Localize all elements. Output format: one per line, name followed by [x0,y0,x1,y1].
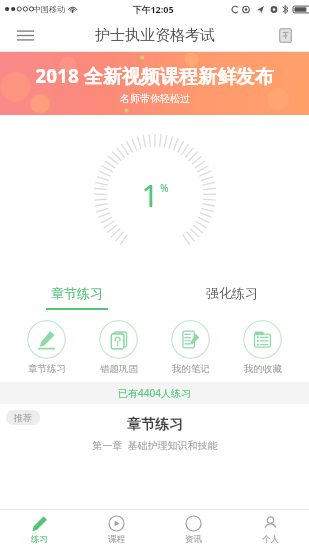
button[interactable]: 我的笔记 [165,320,216,375]
button[interactable]: 个人 [232,510,309,550]
button[interactable]: 章节练习 [21,320,72,375]
staticText: 中国移动 [33,4,65,14]
staticText: 练习 [31,534,48,545]
staticText: 课程 [108,534,125,545]
staticText: 我的收藏 [244,363,282,375]
button[interactable]: 强化练习 [154,275,309,311]
button[interactable]: 练习 [0,510,78,550]
staticText: 下午12:05 [132,3,174,15]
staticText: % [160,181,169,195]
staticText: 名师带你轻松过 [120,92,190,105]
staticText: 已有4404人练习 [118,386,191,400]
button[interactable]: 推荐 [6,410,40,425]
button[interactable]: Menu [8,18,42,52]
staticText: 章节练习 [127,416,183,434]
button[interactable]: 课程 [78,510,155,550]
button[interactable]: 错题巩固 [93,320,144,375]
staticText: 第一章 基础护理知识和技能 [92,438,218,452]
staticText: 错题巩固 [100,363,138,375]
staticText: 1 [141,175,159,216]
button[interactable]: Gift [270,20,300,50]
staticText: 我的笔记 [172,363,210,375]
button[interactable]: 我的收藏 [237,320,288,375]
button[interactable]: 资讯 [155,510,232,550]
staticText: 资讯 [185,534,202,545]
staticText: 护士执业资格考试 [95,26,215,45]
staticText: 个人 [262,534,279,545]
staticText: 2018 全新视频课程新鲜发布 [35,63,274,89]
staticText: 强化练习 [206,285,258,301]
staticText: 推荐 [14,412,32,423]
staticText: 章节练习 [28,363,66,375]
staticText: 章节练习 [51,285,103,301]
button[interactable]: 章节练习 [0,275,154,311]
